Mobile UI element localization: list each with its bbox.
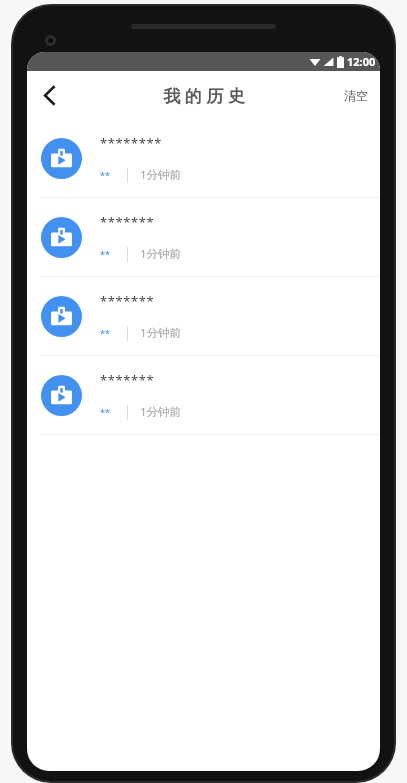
staticText: 12:00 [347, 54, 376, 69]
button[interactable]: ******** [27, 119, 380, 197]
staticText: 1分钟前 [140, 404, 182, 420]
button[interactable]: Back [27, 73, 71, 117]
staticText: 1分钟前 [140, 325, 182, 341]
staticText: ** [100, 406, 110, 418]
staticText: ******* [100, 371, 155, 389]
staticText: ** [100, 169, 110, 181]
staticText: 清空 [344, 88, 368, 103]
staticText: ** [100, 327, 110, 339]
button[interactable]: 清空 [332, 71, 380, 119]
staticText: ******** [100, 134, 163, 152]
button[interactable]: ******* [27, 356, 380, 434]
staticText: ** [100, 248, 110, 260]
button[interactable]: ******* [27, 198, 380, 276]
staticText: 我 的 历 史 [163, 84, 245, 107]
staticText: ******* [100, 213, 155, 231]
staticText: 1分钟前 [140, 246, 182, 262]
staticText: ******* [100, 292, 155, 310]
button[interactable]: ******* [27, 277, 380, 355]
staticText: 1分钟前 [140, 167, 182, 183]
